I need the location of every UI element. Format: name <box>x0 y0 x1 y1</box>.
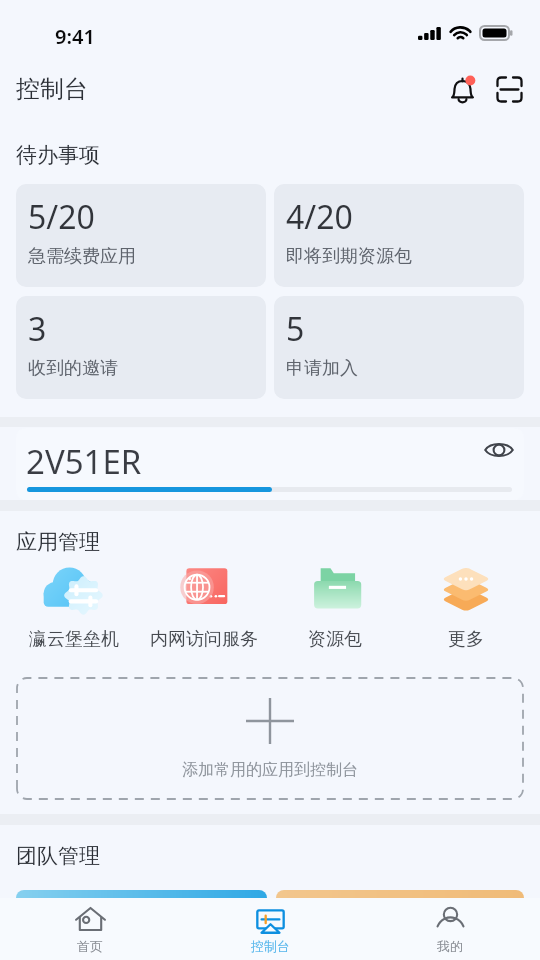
staticText: 申请加入 <box>286 357 358 380</box>
button[interactable]: 5 <box>274 296 524 399</box>
staticText: 添加常用的应用到控制台 <box>182 760 358 780</box>
staticText: 瀛云堡垒机 <box>29 628 119 651</box>
staticText: 团队管理 <box>16 843 100 869</box>
staticText: 即将到期资源包 <box>286 245 412 268</box>
staticText: 5 <box>286 307 305 351</box>
button[interactable] <box>276 890 524 910</box>
staticText: 首页 <box>77 938 103 954</box>
staticText: 待办事项 <box>16 142 100 168</box>
button[interactable]: 4/20 <box>274 184 524 287</box>
staticText: 控制台 <box>16 74 88 104</box>
button[interactable]: 控制台 <box>180 898 360 960</box>
staticText: 9:41 <box>55 23 95 50</box>
staticText: 收到的邀请 <box>28 357 118 380</box>
staticText: 资源包 <box>308 628 362 651</box>
button[interactable]: 首页 <box>0 898 180 960</box>
staticText: 4/20 <box>286 195 353 239</box>
button[interactable]: 瀛云堡垒机 <box>9 560 139 651</box>
button[interactable]: 更多 <box>400 560 531 651</box>
staticText: 急需续费应用 <box>28 245 136 268</box>
staticText: 2V51ER <box>26 439 142 484</box>
staticText: 3 <box>28 307 47 351</box>
button[interactable]: Notifications <box>443 67 487 111</box>
button[interactable]: 2V51ER <box>16 428 524 500</box>
staticText: 我的 <box>437 938 463 954</box>
staticText: 应用管理 <box>16 529 100 555</box>
staticText: 更多 <box>448 628 484 651</box>
button[interactable]: Scan <box>487 67 531 111</box>
button[interactable]: 内网访问服务 <box>139 560 269 651</box>
staticText: 控制台 <box>251 938 290 954</box>
button[interactable]: Show code <box>478 429 520 471</box>
staticText: 内网访问服务 <box>150 628 258 651</box>
button[interactable]: 3 <box>16 296 266 399</box>
button[interactable]: 资源包 <box>269 560 400 651</box>
button[interactable] <box>16 890 267 910</box>
button[interactable]: 我的 <box>360 898 540 960</box>
button[interactable]: 5/20 <box>16 184 266 287</box>
staticText: 5/20 <box>28 195 95 239</box>
button[interactable]: 添加常用的应用到控制台 <box>17 678 523 799</box>
